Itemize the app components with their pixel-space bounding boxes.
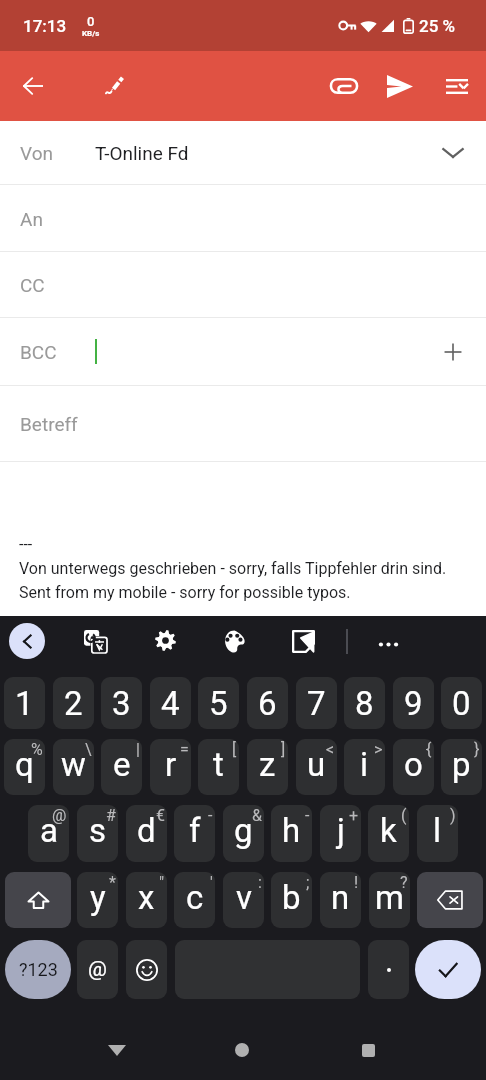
button[interactable]: Emoji <box>126 940 167 999</box>
button[interactable]: j <box>320 805 361 862</box>
button[interactable]: u <box>296 739 337 795</box>
staticText: € <box>156 806 165 825</box>
button[interactable]: CC <box>0 252 486 318</box>
button[interactable]: e <box>101 739 142 795</box>
button[interactable]: Back <box>13 66 53 106</box>
button[interactable]: y <box>77 872 118 928</box>
button[interactable]: 2 <box>53 677 94 729</box>
staticText: ] <box>281 740 286 759</box>
button[interactable]: An <box>0 185 486 252</box>
staticText: t <box>213 745 224 784</box>
button[interactable]: q <box>4 739 45 795</box>
button[interactable]: More options <box>437 66 477 106</box>
staticText: h <box>282 811 301 850</box>
staticText: @ <box>88 957 107 982</box>
button[interactable]: @ <box>77 940 118 999</box>
button[interactable]: g <box>223 805 264 862</box>
staticText: Sent from my mobile - sorry for possible… <box>19 583 351 602</box>
button[interactable]: l <box>417 805 458 862</box>
button[interactable]: ?123 <box>5 940 71 999</box>
staticText: e <box>113 745 131 784</box>
button[interactable]: Attach file <box>324 66 364 106</box>
staticText: k <box>380 811 397 850</box>
staticText: * <box>109 873 116 892</box>
button[interactable]: k <box>368 805 409 862</box>
staticText: ' <box>210 873 213 892</box>
button[interactable]: 0 <box>441 677 482 729</box>
staticText: 9 <box>404 684 423 723</box>
button[interactable]: h <box>271 805 312 862</box>
button[interactable]: v <box>223 872 264 928</box>
staticText: v <box>236 878 252 917</box>
button[interactable]: Theme <box>223 630 246 653</box>
button[interactable]: Hide toolbar <box>9 623 45 659</box>
button[interactable]: f <box>174 805 215 862</box>
button[interactable]: Expand <box>433 133 473 173</box>
staticText: m <box>375 878 404 917</box>
button[interactable]: b <box>271 872 312 928</box>
button[interactable]: Home <box>220 1028 264 1072</box>
button[interactable]: i <box>344 739 385 795</box>
staticText: 17:13 <box>23 16 67 36</box>
staticText: ) <box>450 806 456 825</box>
staticText: 8 <box>355 684 374 723</box>
button[interactable]: w <box>53 739 94 795</box>
staticText: An <box>20 208 43 230</box>
staticText: 0 <box>87 14 95 29</box>
button[interactable]: a <box>28 805 69 862</box>
button[interactable]: 8 <box>344 677 385 729</box>
staticText: 5 <box>209 684 228 723</box>
button[interactable]: n <box>320 872 361 928</box>
button[interactable]: m <box>369 872 410 928</box>
button[interactable]: Translate <box>84 630 107 653</box>
button[interactable]: More <box>378 634 399 655</box>
button[interactable]: Stickers <box>292 630 315 653</box>
staticText: u <box>307 745 326 784</box>
button[interactable]: Back <box>95 1028 139 1072</box>
staticText: 25 % <box>419 16 456 36</box>
button[interactable]: 4 <box>150 677 191 729</box>
staticText: | <box>136 740 140 759</box>
staticText: l <box>433 811 442 850</box>
button[interactable]: Signature <box>94 66 134 106</box>
button[interactable]: t <box>198 739 239 795</box>
staticText: --- <box>19 535 33 554</box>
button[interactable]: x <box>126 872 167 928</box>
staticText: ? <box>400 873 408 892</box>
button[interactable]: 6 <box>247 677 288 729</box>
button[interactable]: 5 <box>198 677 239 729</box>
button[interactable]: p <box>441 739 482 795</box>
button[interactable]: Enter <box>415 940 481 999</box>
button[interactable]: r <box>150 739 191 795</box>
button[interactable]: s <box>77 805 118 862</box>
staticText: BCC <box>20 341 57 363</box>
staticText: q <box>15 745 34 784</box>
staticText: p <box>452 745 471 784</box>
button[interactable]: 1 <box>4 677 45 729</box>
button[interactable]: z <box>247 739 288 795</box>
button[interactable]: Betreff <box>0 386 486 462</box>
button[interactable]: 3 <box>101 677 142 729</box>
button[interactable]: 9 <box>393 677 434 729</box>
staticText: > <box>374 740 383 759</box>
button[interactable]: Shift <box>5 872 71 928</box>
staticText: " <box>159 873 165 892</box>
button[interactable]: Von <box>0 121 486 185</box>
button[interactable]: 7 <box>296 677 337 729</box>
button[interactable]: Settings <box>155 630 176 651</box>
staticText: ! <box>354 873 359 892</box>
staticText: # <box>106 806 116 825</box>
button[interactable]: BCC <box>0 318 486 386</box>
button[interactable]: o <box>393 739 434 795</box>
button[interactable]: Send <box>380 66 420 106</box>
button[interactable]: c <box>174 872 215 928</box>
staticText: \ <box>85 740 92 759</box>
button[interactable]: Period <box>368 940 409 999</box>
button[interactable]: Recents <box>346 1028 390 1072</box>
button[interactable]: Add recipient <box>433 332 473 372</box>
staticText: 1 <box>15 684 34 723</box>
button[interactable]: d <box>126 805 167 862</box>
staticText: 3 <box>112 684 131 723</box>
button[interactable]: Backspace <box>417 872 483 928</box>
